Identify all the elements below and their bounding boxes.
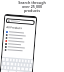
button[interactable] [13,67,16,70]
button[interactable] [20,63,22,66]
button[interactable] [25,59,27,63]
button[interactable] [4,30,35,35]
button[interactable] [3,45,34,50]
button[interactable] [14,63,17,66]
staticText: All Products [6,25,22,30]
button[interactable] [3,42,34,47]
button[interactable] [3,39,34,44]
button[interactable] [21,67,24,70]
button[interactable] [16,59,18,62]
button[interactable] [29,64,31,67]
button[interactable] [9,70,16,72]
button[interactable] [17,63,20,66]
button[interactable] [29,68,32,71]
button[interactable] [26,64,28,67]
button[interactable] [2,62,6,65]
staticText: products [0,8,64,13]
button[interactable] [28,60,30,63]
button[interactable] [19,59,21,62]
button[interactable] [10,62,14,66]
staticText: over 25,000 [0,4,64,9]
button[interactable] [2,48,34,53]
button[interactable] [25,68,28,71]
button[interactable] [4,33,35,38]
button[interactable] [22,59,24,62]
button[interactable] [31,60,33,63]
button[interactable] [2,58,5,61]
button[interactable] [23,63,25,67]
button[interactable] [17,67,20,70]
button[interactable]: Search [7,19,34,24]
button[interactable] [10,58,12,61]
staticText: Search through [0,0,64,5]
button[interactable] [3,36,34,41]
button[interactable] [6,58,9,61]
button[interactable] [13,59,15,62]
button[interactable] [6,62,10,65]
button[interactable] [1,70,8,72]
button[interactable] [1,66,3,69]
button[interactable] [10,66,12,69]
button[interactable] [17,71,24,72]
button[interactable] [7,66,9,69]
button[interactable] [4,66,6,69]
